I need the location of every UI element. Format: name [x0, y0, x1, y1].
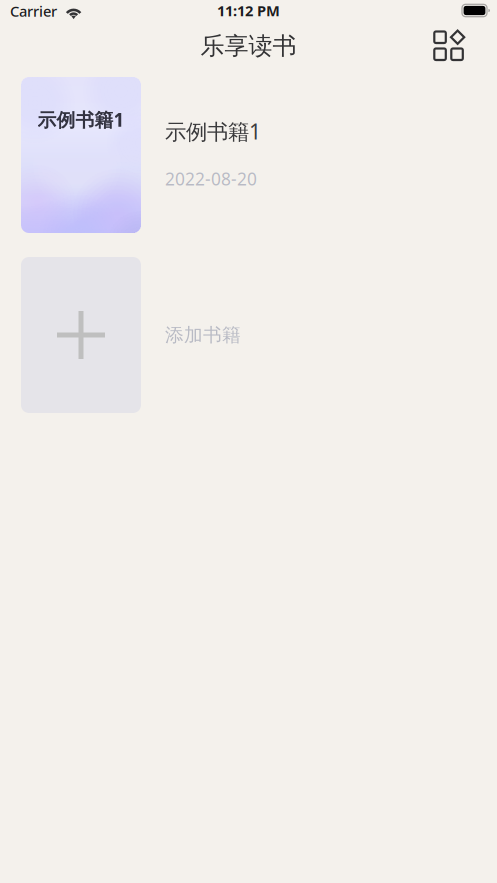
button[interactable]: Categories	[433, 28, 465, 60]
staticText: 2022-08-20	[165, 167, 257, 190]
staticText: 11:12 PM	[217, 1, 280, 20]
staticText: 乐享读书	[200, 31, 296, 61]
staticText: 添加书籍	[165, 323, 241, 346]
staticText: Carrier	[10, 1, 57, 21]
button[interactable]: 示例书籍1	[0, 77, 497, 233]
staticText: 示例书籍1	[37, 107, 124, 132]
button[interactable]: 添加书籍	[0, 257, 497, 413]
staticText: 示例书籍1	[165, 117, 261, 145]
